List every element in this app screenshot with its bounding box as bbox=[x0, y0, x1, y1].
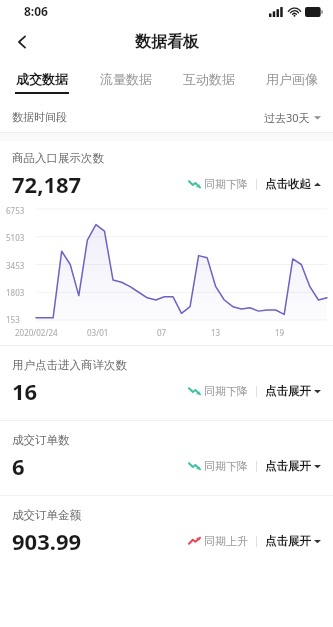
staticText: 点击收起 bbox=[265, 177, 311, 191]
staticText: 点击展开 bbox=[265, 384, 311, 398]
staticText: 同期上升 bbox=[204, 534, 248, 548]
staticText: 同期下降 bbox=[204, 459, 248, 473]
staticText: 点击展开 bbox=[265, 459, 311, 473]
staticText: 成交订单数 bbox=[12, 433, 70, 447]
button[interactable]: 成交订单数 bbox=[0, 421, 333, 495]
staticText: 用户画像 bbox=[266, 71, 318, 87]
button[interactable]: 点击展开 bbox=[265, 384, 321, 398]
staticText: 成交数据 bbox=[16, 71, 68, 87]
staticText: 同期下降 bbox=[204, 384, 248, 398]
staticText: 5103 bbox=[6, 232, 25, 243]
staticText: 72,187 bbox=[12, 169, 82, 199]
staticText: 数据看板 bbox=[135, 32, 199, 52]
button[interactable]: 成交数据 bbox=[0, 71, 84, 94]
staticText: 153 bbox=[6, 314, 20, 325]
staticText: 8:06 bbox=[24, 3, 48, 19]
button[interactable]: 数据时间段 bbox=[0, 102, 333, 132]
staticText: 成交订单金额 bbox=[12, 508, 81, 522]
button[interactable]: 用户画像 bbox=[250, 71, 333, 94]
button[interactable]: 用户点击进入商详次数 bbox=[0, 346, 333, 420]
staticText: 16 bbox=[12, 376, 38, 406]
staticText: 03/01 bbox=[87, 327, 109, 338]
staticText: 互动数据 bbox=[183, 71, 235, 87]
staticText: 1803 bbox=[6, 287, 25, 298]
button[interactable]: Back bbox=[6, 26, 38, 58]
staticText: 19 bbox=[275, 327, 285, 338]
staticText: 用户点击进入商详次数 bbox=[12, 358, 127, 372]
button[interactable]: 点击展开 bbox=[265, 459, 321, 473]
button[interactable]: 点击收起 bbox=[265, 177, 321, 191]
staticText: 2020/02/24 bbox=[15, 327, 58, 338]
staticText: 07 bbox=[157, 327, 167, 338]
staticText: 6 bbox=[12, 451, 25, 481]
staticText: 同期下降 bbox=[204, 177, 248, 191]
button[interactable]: 互动数据 bbox=[167, 71, 250, 94]
staticText: 6753 bbox=[6, 205, 25, 216]
staticText: 3453 bbox=[6, 260, 25, 271]
staticText: 13 bbox=[211, 327, 221, 338]
staticText: 过去30天 bbox=[264, 110, 310, 125]
staticText: 点击展开 bbox=[265, 534, 311, 548]
button[interactable]: 流量数据 bbox=[84, 71, 167, 94]
staticText: 903.99 bbox=[12, 526, 82, 556]
button[interactable]: 点击展开 bbox=[265, 534, 321, 548]
staticText: 流量数据 bbox=[100, 71, 152, 87]
button[interactable]: 成交订单金额 bbox=[0, 496, 333, 570]
staticText: 商品入口展示次数 bbox=[12, 151, 104, 165]
staticText: 数据时间段 bbox=[12, 110, 67, 124]
